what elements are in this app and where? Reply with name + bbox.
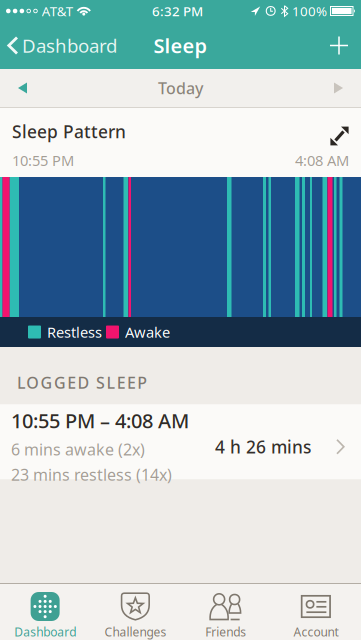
staticText: Sleep Pattern [12,120,126,143]
staticText: 100% [292,2,327,20]
staticText: AT&T [42,2,73,20]
button[interactable] [0,82,27,93]
button[interactable]: Challenges [90,592,180,640]
staticText: Dashboard [22,33,117,58]
staticText: 23 mins restless (14x) [11,464,172,485]
staticText: 4 h 26 mins [215,435,311,458]
button[interactable]: 10:55 PM – 4:08 AM [0,404,361,479]
staticText: Sleep [153,32,207,59]
staticText: Dashboard [14,624,76,640]
staticText: 4:08 AM [295,150,349,170]
staticText: 10:55 PM [12,150,74,170]
staticText: Account [293,624,338,640]
button[interactable]: Dashboard [0,592,90,640]
staticText: 6:32 PM [152,2,203,20]
button[interactable] [330,36,361,54]
staticText: Challenges [104,624,166,640]
staticText: Friends [205,624,246,640]
button[interactable]: Dashboard [0,33,117,58]
staticText: 10:55 PM – 4:08 AM [11,407,189,434]
staticText: 6 mins awake (2x) [11,439,145,460]
staticText: LOGGED SLEEP [17,372,147,393]
button[interactable]: Account [271,592,361,640]
button[interactable]: Friends [180,592,271,640]
staticText: Restless [47,322,102,342]
button[interactable] [330,108,349,146]
button[interactable] [334,82,361,93]
staticText: Awake [125,322,170,342]
staticText: Today [158,77,203,99]
